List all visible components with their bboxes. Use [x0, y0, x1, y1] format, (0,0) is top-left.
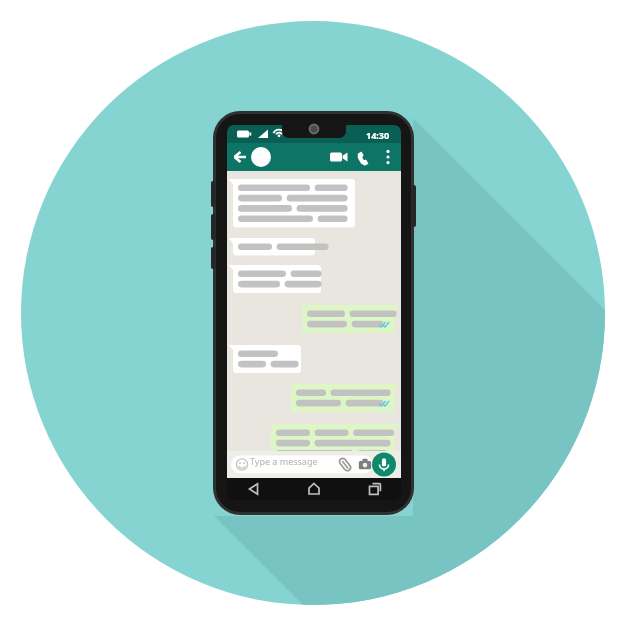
button[interactable]: Type a message — [231, 452, 371, 472]
button[interactable]: Contact profile — [254, 145, 281, 172]
staticText: 14:30 — [366, 129, 390, 141]
button[interactable]: Video call — [330, 148, 354, 170]
staticText: Type a message — [250, 455, 318, 467]
button[interactable]: Back — [232, 148, 254, 170]
button[interactable]: More options — [382, 146, 400, 172]
button[interactable]: Voice call — [358, 148, 380, 170]
button[interactable]: Record voice message — [371, 450, 395, 474]
button[interactable]: Recent apps — [367, 480, 387, 500]
button[interactable]: Home — [304, 480, 324, 500]
button[interactable]: Back — [239, 480, 259, 500]
